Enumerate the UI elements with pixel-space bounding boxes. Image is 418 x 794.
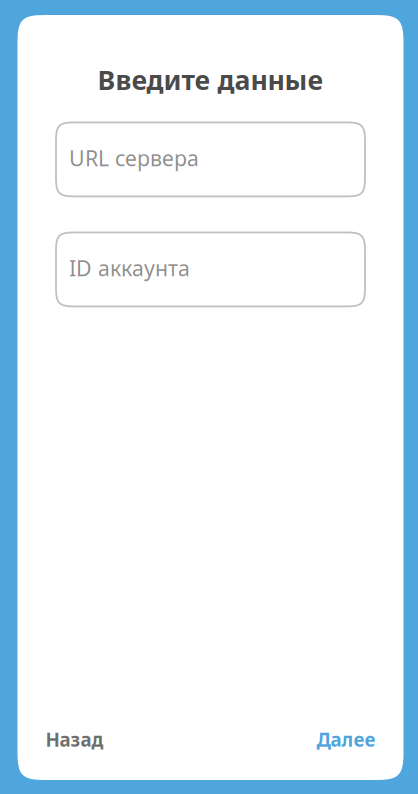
staticText: Назад (45, 727, 103, 752)
staticText: ID аккаунта (69, 254, 190, 282)
button[interactable]: Далее (316, 727, 375, 752)
staticText: Введите данные (97, 62, 323, 97)
staticText: URL сервера (69, 144, 199, 172)
button[interactable]: ID аккаунта (56, 232, 365, 306)
staticText: Далее (316, 727, 375, 752)
button[interactable]: Назад (45, 727, 103, 752)
button[interactable]: URL сервера (56, 122, 365, 196)
